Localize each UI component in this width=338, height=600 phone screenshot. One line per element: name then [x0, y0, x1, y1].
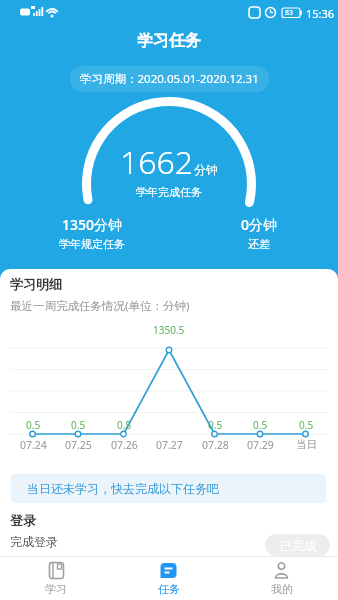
button[interactable]: 学习周期：2020.05.01-2020.12.31	[70, 66, 269, 92]
staticText: 0.5	[117, 418, 132, 432]
staticText: 0.5	[71, 418, 86, 432]
staticText: 已完成	[280, 538, 316, 553]
staticText: 分钟	[194, 162, 218, 177]
staticText: 0.5	[26, 418, 41, 432]
staticText: 我的	[271, 582, 293, 596]
staticText: 07.25	[65, 438, 92, 452]
staticText: 登录	[10, 512, 36, 528]
button[interactable]	[0, 527, 338, 567]
staticText: 还差	[248, 237, 270, 251]
staticText: 0.5	[253, 418, 268, 432]
staticText: 学习明细	[10, 276, 62, 292]
staticText: 学习周期：2020.05.01-2020.12.31	[80, 71, 259, 87]
staticText: 0.5	[208, 418, 223, 432]
staticText: 07.29	[247, 438, 274, 452]
staticText: 1350分钟	[62, 215, 123, 234]
staticText: 07.24	[20, 438, 47, 452]
staticText: 1662	[120, 140, 194, 184]
button[interactable]: 任务	[112, 557, 225, 600]
staticText: 任务	[158, 582, 180, 596]
staticText: 当日还未学习，快去完成以下任务吧	[27, 481, 219, 496]
staticText: 0分钟	[241, 215, 278, 234]
staticText: 学习	[45, 582, 67, 596]
button[interactable]: 已完成	[265, 534, 330, 556]
staticText: 学年规定任务	[59, 237, 125, 251]
staticText: 1350.5	[153, 323, 185, 337]
staticText: 最近一周完成任务情况(单位：分钟)	[10, 298, 190, 314]
staticText: 07.26	[111, 438, 138, 452]
staticText: 完成登录	[10, 534, 58, 549]
staticText: 0.5	[299, 418, 314, 432]
staticText: 83	[285, 8, 294, 18]
staticText: 当日	[296, 438, 317, 451]
button[interactable]: 我的	[225, 557, 338, 600]
staticText: 15:36	[306, 6, 335, 21]
staticText: 学习任务	[137, 31, 201, 51]
staticText: 学年完成任务	[136, 185, 202, 199]
staticText: 07.28	[202, 438, 229, 452]
button[interactable]: 学习	[0, 557, 112, 600]
staticText: 07.27	[156, 438, 183, 452]
button[interactable]: 当日还未学习，快去完成以下任务吧	[11, 474, 326, 503]
